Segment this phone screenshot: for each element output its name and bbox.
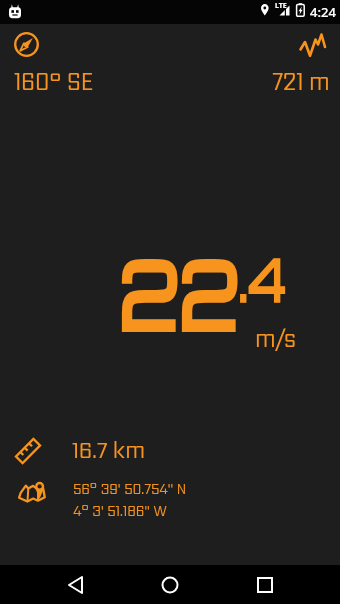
staticText: LTE	[275, 1, 287, 11]
staticText: 160° SE	[14, 63, 93, 99]
button[interactable]: Altitude	[240, 32, 326, 68]
button[interactable]: Bearing	[14, 32, 111, 99]
button[interactable]: 16.7 km	[13, 432, 162, 467]
staticText: 56° 39' 50.754'' N	[73, 477, 187, 499]
staticText: 4:24	[310, 3, 336, 21]
staticText: .4	[239, 240, 286, 315]
staticText: 22	[119, 228, 239, 352]
staticText: m/s	[255, 320, 297, 356]
staticText: 16.7 km	[72, 432, 146, 467]
button[interactable]: Recents	[246, 566, 284, 604]
staticText: 22	[119, 228, 239, 352]
staticText: 4° 3' 51.186'' W	[73, 499, 167, 521]
staticText: 721 m	[272, 63, 330, 99]
button[interactable]: Home	[151, 566, 189, 604]
button[interactable]: Back	[57, 566, 95, 604]
button[interactable]: 56° 39' 50.754'' N	[18, 477, 212, 521]
staticText: .4	[239, 240, 286, 315]
